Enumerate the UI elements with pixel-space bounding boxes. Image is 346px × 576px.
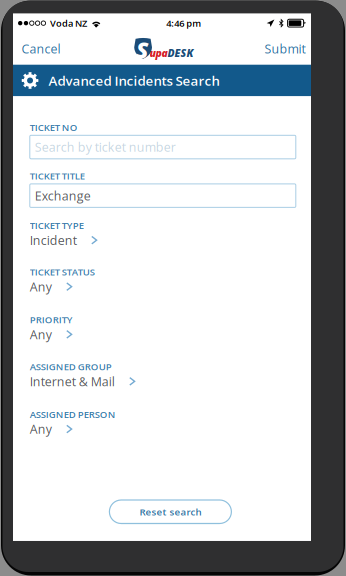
button[interactable]: Reset search: [109, 500, 231, 523]
staticText: S: [136, 34, 148, 65]
button[interactable]: Submit: [256, 33, 313, 65]
staticText: DESK: [168, 46, 194, 60]
staticText: 4:46 pm: [166, 17, 201, 29]
staticText: PRIORITY: [30, 313, 73, 326]
staticText: Reset search: [139, 505, 201, 518]
button[interactable]: Cancel: [14, 33, 69, 65]
button[interactable]: ASSIGNED PERSON: [30, 410, 296, 436]
staticText: Cancel: [22, 40, 61, 57]
staticText: Exchange: [35, 187, 91, 204]
staticText: Advanced Incidents Search: [48, 71, 219, 90]
staticText: Voda NZ: [50, 17, 87, 29]
staticText: upa: [150, 46, 168, 60]
staticText: Submit: [264, 40, 305, 57]
staticText: ASSIGNED GROUP: [30, 360, 112, 373]
staticText: ASSIGNED PERSON: [30, 408, 116, 421]
staticText: Any: [30, 278, 52, 295]
staticText: Search by ticket number: [35, 139, 176, 155]
staticText: TICKET TITLE: [30, 169, 85, 182]
staticText: TICKET NO: [30, 121, 78, 134]
staticText: TICKET TYPE: [30, 219, 84, 232]
staticText: Internet & Mail: [30, 373, 115, 390]
staticText: Any: [30, 326, 52, 343]
staticText: Incident: [30, 232, 77, 249]
button[interactable]: TICKET TYPE: [30, 221, 296, 247]
button[interactable]: TICKET STATUS: [30, 267, 296, 293]
button[interactable]: PRIORITY: [30, 315, 296, 341]
staticText: TICKET STATUS: [30, 265, 95, 278]
staticText: Any: [30, 421, 52, 437]
button[interactable]: ASSIGNED GROUP: [30, 362, 296, 388]
